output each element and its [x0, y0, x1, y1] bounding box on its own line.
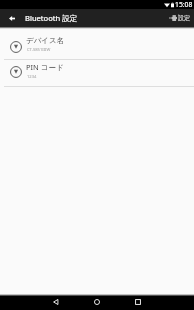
staticText: 設定: [178, 14, 190, 22]
staticText: PIN コード: [26, 62, 64, 72]
button[interactable]: 設定: [169, 9, 194, 27]
staticText: CT-S851IIIW: [27, 47, 51, 53]
button[interactable]: Home: [86, 295, 108, 310]
staticText: 1234: [27, 74, 37, 80]
button[interactable]: Recents: [127, 295, 149, 310]
staticText: デバイス名: [26, 36, 65, 45]
staticText: 15:08: [175, 0, 193, 9]
button[interactable]: Back: [45, 295, 67, 310]
button[interactable]: PIN コード: [0, 59, 194, 87]
button[interactable]: Back: [0, 9, 24, 27]
button[interactable]: デバイス名: [0, 30, 194, 59]
staticText: Bluetooth 設定: [25, 13, 78, 23]
